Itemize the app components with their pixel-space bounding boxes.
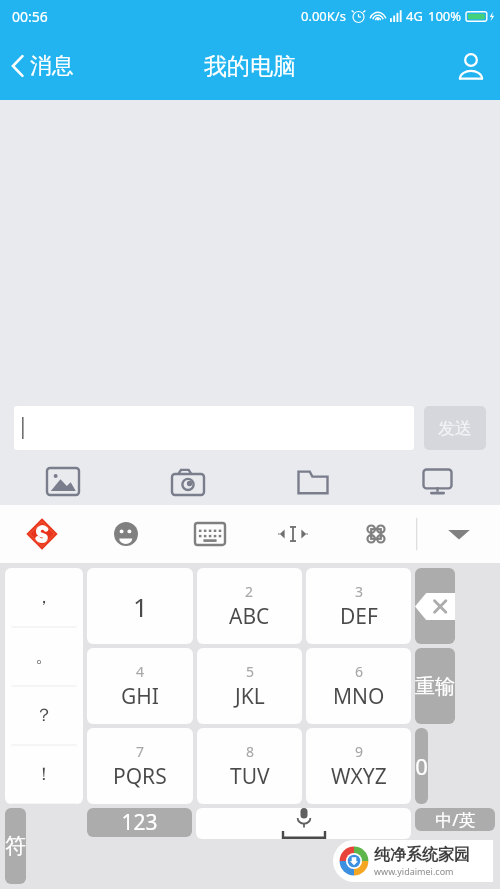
staticText: PQRS: [113, 762, 167, 791]
button[interactable]: 中/英: [415, 808, 495, 831]
button[interactable]: Screen: [375, 457, 500, 505]
staticText: 。: [35, 645, 53, 668]
staticText: 4G: [406, 7, 423, 25]
staticText: 5: [246, 662, 255, 681]
button[interactable]: Emoji: [84, 505, 168, 563]
staticText: 纯净系统家园: [374, 845, 470, 865]
button[interactable]: 6: [306, 648, 411, 724]
button[interactable]: [14, 406, 414, 450]
staticText: www.yidaimei.com: [374, 865, 454, 877]
staticText: 00:56: [12, 7, 48, 26]
staticText: 7: [136, 742, 145, 761]
button[interactable]: Space / voice input: [196, 808, 411, 839]
button[interactable]: 2: [197, 568, 302, 644]
button[interactable]: Files: [250, 457, 375, 505]
button[interactable]: 消息: [0, 44, 86, 88]
button[interactable]: 5: [197, 648, 302, 724]
button[interactable]: 7: [87, 728, 193, 804]
staticText: ，: [35, 586, 53, 609]
staticText: 0: [415, 751, 428, 781]
staticText: 123: [121, 808, 158, 837]
staticText: 2: [245, 582, 254, 601]
button[interactable]: ！: [5, 745, 83, 804]
button[interactable]: Hide keyboard: [417, 505, 500, 563]
staticText: 8: [246, 742, 255, 761]
staticText: 发送: [438, 418, 472, 439]
button[interactable]: 。: [5, 627, 83, 686]
staticText: TUV: [230, 762, 270, 791]
button[interactable]: 0: [415, 728, 428, 804]
button[interactable]: 重输: [415, 648, 455, 724]
button[interactable]: 4: [87, 648, 193, 724]
button[interactable]: ，: [5, 568, 83, 627]
button[interactable]: 1: [87, 568, 193, 644]
staticText: 9: [355, 742, 364, 761]
staticText: 6: [355, 662, 364, 681]
button[interactable]: Keyboard layout: [168, 505, 251, 563]
staticText: MNO: [333, 682, 385, 711]
staticText: 100%: [428, 7, 462, 25]
button[interactable]: Sogou input: [0, 505, 84, 563]
button[interactable]: Cursor move: [251, 505, 334, 563]
staticText: 我的电脑: [204, 52, 296, 81]
staticText: 消息: [30, 52, 74, 80]
button[interactable]: 123: [87, 808, 192, 837]
staticText: DEF: [340, 602, 378, 631]
button[interactable]: Camera: [125, 457, 250, 505]
button[interactable]: Shortcuts: [334, 505, 417, 563]
staticText: 符: [5, 833, 26, 859]
button[interactable]: Photos: [0, 457, 125, 505]
button[interactable]: 3: [306, 568, 411, 644]
staticText: GHI: [121, 682, 159, 711]
button[interactable]: ？: [5, 686, 83, 745]
staticText: ？: [35, 704, 53, 727]
staticText: 4: [136, 662, 145, 681]
button[interactable]: Backspace: [415, 568, 455, 644]
staticText: 中/英: [435, 808, 476, 831]
button[interactable]: 发送: [424, 406, 486, 450]
staticText: 0.00K/s: [301, 7, 346, 25]
button[interactable]: Profile: [442, 41, 500, 91]
staticText: 3: [355, 582, 364, 601]
button[interactable]: 9: [306, 728, 411, 804]
button[interactable]: 符: [5, 808, 26, 884]
staticText: ！: [35, 763, 53, 786]
staticText: WXYZ: [331, 762, 387, 791]
button[interactable]: 8: [197, 728, 302, 804]
staticText: 1: [133, 589, 148, 624]
staticText: ABC: [229, 602, 270, 631]
staticText: 重输: [415, 674, 455, 699]
staticText: JKL: [235, 682, 265, 711]
